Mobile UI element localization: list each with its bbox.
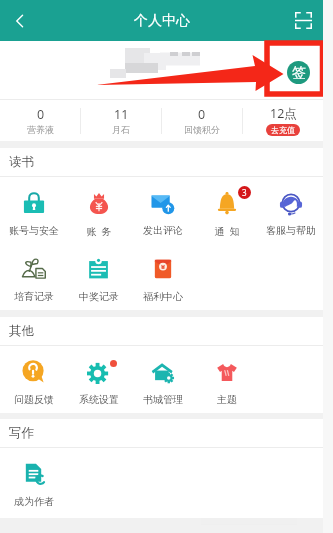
staticText: 账 务: [86, 224, 112, 238]
button[interactable]: 账号与安全: [1, 177, 66, 243]
button[interactable]: 系统设置: [66, 346, 131, 413]
staticText: 回馈积分: [184, 124, 220, 135]
button[interactable]: 福利中心: [131, 243, 195, 310]
staticText: 发出评论: [143, 224, 183, 237]
button[interactable]: 0: [162, 100, 242, 141]
staticText: 个人中心: [134, 12, 190, 30]
button[interactable]: 书城管理: [131, 346, 195, 413]
staticText: 12点: [270, 105, 297, 122]
staticText: 0: [198, 106, 206, 123]
button[interactable]: Scan QR code: [283, 0, 323, 41]
staticText: 系统设置: [79, 393, 119, 406]
button[interactable]: 0: [0, 100, 80, 141]
staticText: 书城管理: [143, 393, 183, 406]
staticText: 11: [114, 106, 129, 123]
staticText: 中奖记录: [79, 290, 119, 303]
staticText: 营养液: [27, 124, 54, 135]
staticText: 问题反馈: [14, 393, 54, 406]
staticText: 成为作者: [14, 495, 54, 508]
staticText: 签: [292, 64, 306, 82]
staticText: 其他: [9, 323, 34, 339]
staticText: 读书: [9, 154, 34, 170]
staticText: 通 知: [214, 224, 240, 238]
staticText: 写作: [9, 425, 34, 441]
button[interactable]: 问题反馈: [1, 346, 66, 413]
staticText: 月石: [112, 124, 130, 135]
button[interactable]: 发出评论: [131, 177, 195, 243]
staticText: 去充值: [271, 125, 295, 135]
button[interactable]: 11: [81, 100, 161, 141]
staticText: 福利中心: [143, 290, 183, 303]
button[interactable]: Sign in: [287, 61, 310, 84]
staticText: 客服与帮助: [266, 224, 316, 237]
button[interactable]: 3: [195, 177, 259, 243]
staticText: 3: [242, 187, 247, 198]
button[interactable]: 培育记录: [1, 243, 66, 310]
staticText: 0: [37, 106, 45, 123]
button[interactable]: 12点: [243, 100, 323, 141]
button[interactable]: 成为作者: [1, 448, 66, 518]
staticText: 主题: [217, 393, 237, 406]
button[interactable]: 客服与帮助: [259, 177, 323, 243]
button[interactable]: 主题: [195, 346, 259, 413]
staticText: 账号与安全: [9, 224, 59, 237]
button[interactable]: Back: [0, 0, 40, 41]
button[interactable]: 中奖记录: [66, 243, 131, 310]
staticText: 培育记录: [14, 290, 54, 303]
button[interactable]: 账 务: [66, 177, 131, 243]
